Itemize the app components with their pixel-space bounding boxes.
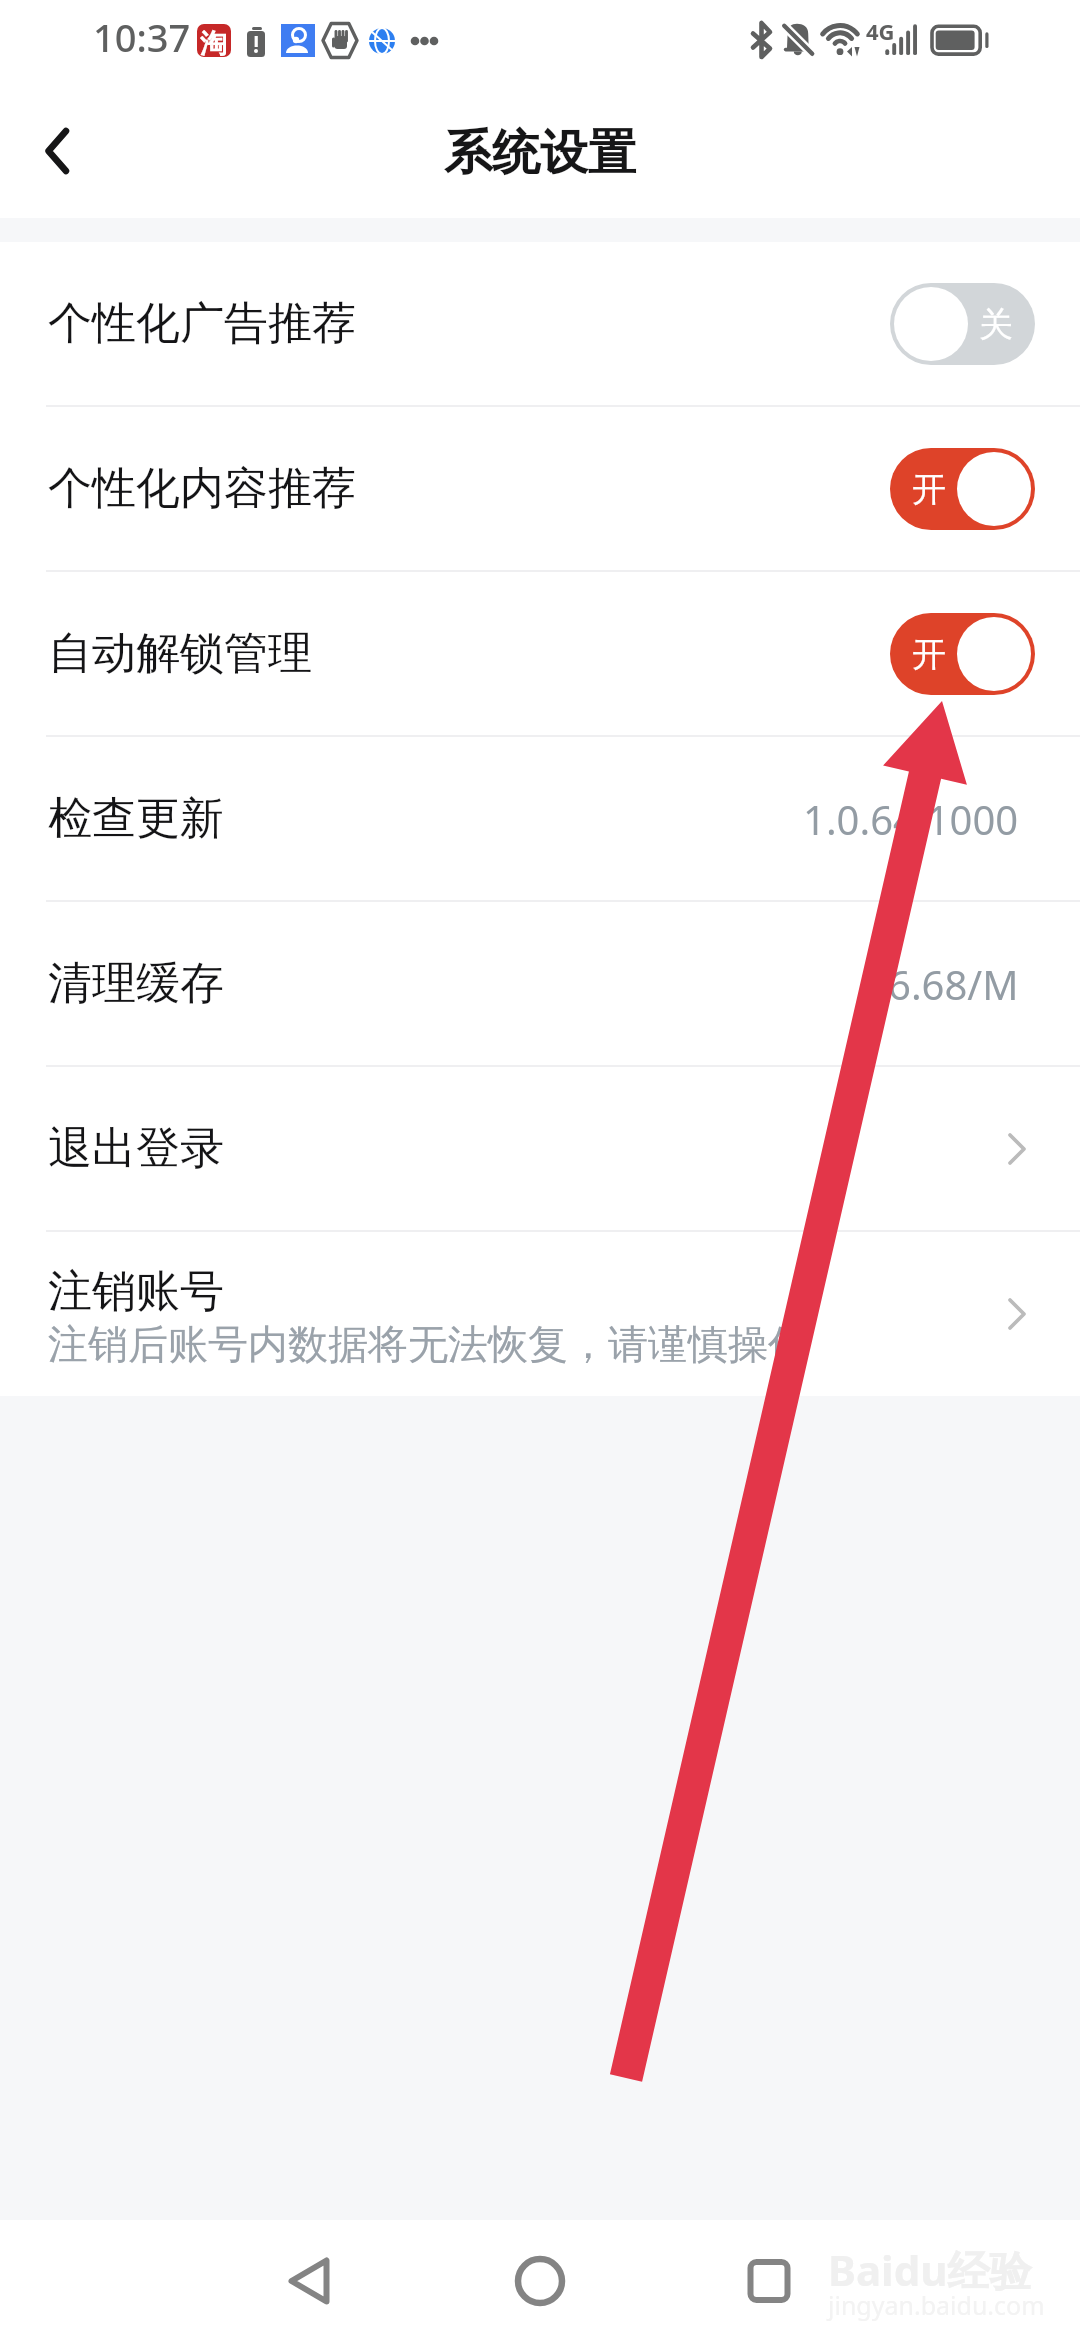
button[interactable]: 检查更新	[0, 737, 1080, 900]
staticText: 淘	[200, 27, 227, 61]
staticText: 开	[912, 633, 946, 676]
staticText: 自动解锁管理	[48, 626, 312, 681]
staticText: 个性化广告推荐	[48, 296, 356, 351]
staticText: 开	[912, 468, 946, 511]
staticText: 系统设置	[444, 123, 636, 183]
button[interactable]: 注销账号	[0, 1232, 1080, 1396]
staticText: 注销后账号内数据将无法恢复，请谨慎操作	[48, 1319, 808, 1369]
staticText: jingyan.baidu.com	[828, 2288, 1045, 2322]
staticText: 1.0.64.1000	[803, 792, 1019, 846]
staticText: 10:37	[93, 11, 191, 63]
button[interactable]: 个性化广告推荐	[0, 242, 1080, 405]
staticText: 清理缓存	[48, 956, 224, 1011]
button[interactable]: Back	[0, 76, 112, 218]
button[interactable]: 退出登录	[0, 1067, 1080, 1230]
staticText: 注销账号	[48, 1264, 224, 1319]
staticText: 退出登录	[48, 1121, 224, 1176]
button[interactable]: Home	[480, 2220, 600, 2340]
button[interactable]: 关 Off	[890, 283, 1035, 365]
staticText: 个性化内容推荐	[48, 461, 356, 516]
button[interactable]: 个性化内容推荐	[0, 407, 1080, 570]
button[interactable]: 清理缓存	[0, 902, 1080, 1065]
staticText: 关	[979, 303, 1013, 346]
staticText: 4G	[866, 16, 895, 46]
button[interactable]: Recent apps	[709, 2220, 829, 2340]
button[interactable]: 自动解锁管理	[0, 572, 1080, 735]
staticText: 检查更新	[48, 791, 224, 846]
staticText: Baidu经验	[828, 2241, 1032, 2298]
button[interactable]: Back	[249, 2220, 369, 2340]
staticText: 6.68/M	[888, 957, 1019, 1011]
button[interactable]: 开 On	[890, 613, 1035, 695]
button[interactable]: 开 On	[890, 448, 1035, 530]
